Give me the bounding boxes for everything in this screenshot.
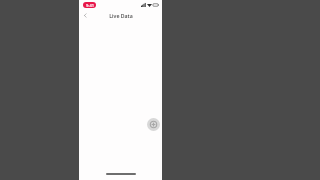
- staticText: 9:41: [86, 3, 94, 8]
- staticText: Live Data: [109, 12, 133, 19]
- button[interactable]: Back: [80, 10, 91, 21]
- button[interactable]: Add live data item: [147, 118, 160, 131]
